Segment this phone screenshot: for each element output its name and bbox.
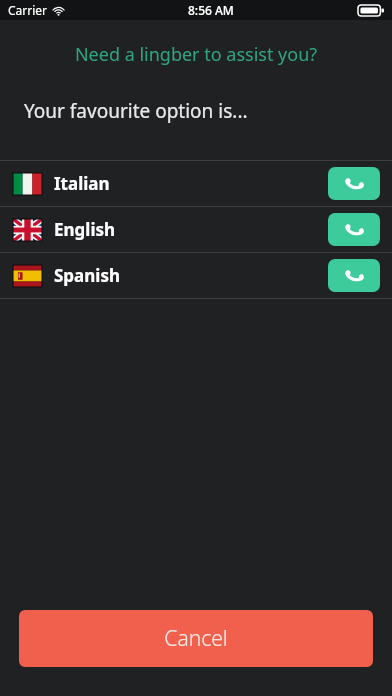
staticText: Need a lingber to assist you? [0, 42, 392, 67]
button[interactable]: Call English [328, 213, 380, 246]
staticText: Italian [54, 172, 110, 195]
staticText: Spanish [54, 264, 121, 287]
staticText: Cancel [164, 624, 228, 653]
button[interactable]: Italian [0, 161, 392, 206]
button[interactable]: English [0, 207, 392, 252]
button[interactable]: Call Italian [328, 167, 380, 200]
staticText: English [54, 218, 116, 241]
staticText: 8:56 AM [188, 2, 234, 18]
button[interactable]: Spanish [0, 253, 392, 298]
button[interactable]: Call Spanish [328, 259, 380, 292]
button[interactable]: Cancel [19, 610, 373, 667]
staticText: Carrier [8, 2, 48, 18]
staticText: Your favourite option is... [24, 98, 392, 124]
